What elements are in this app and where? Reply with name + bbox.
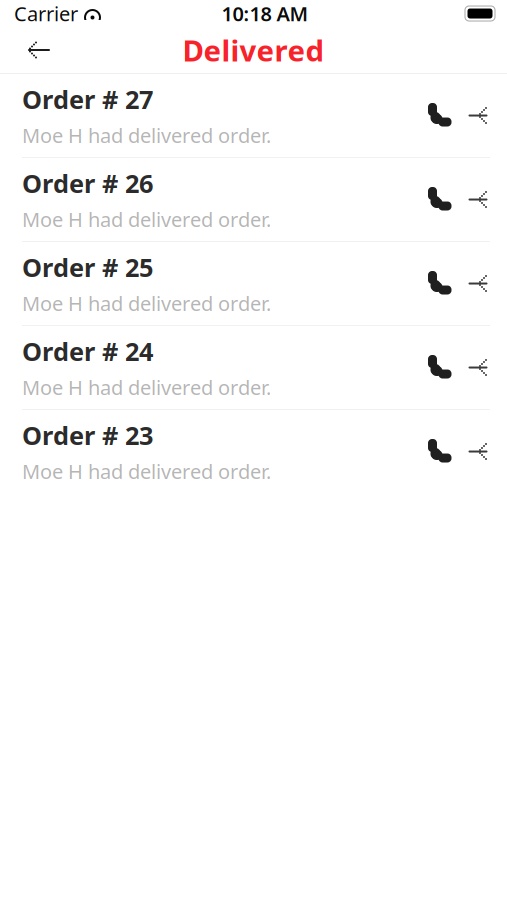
staticText: Order # 24	[22, 334, 153, 368]
button[interactable]: View order 25	[459, 257, 497, 309]
staticText: Moe H had delivered order.	[22, 122, 271, 149]
button[interactable]: View order 27	[459, 89, 497, 141]
button[interactable]: View order 24	[459, 341, 497, 393]
staticText: Moe H had delivered order.	[22, 290, 271, 317]
staticText: Moe H had delivered order.	[22, 374, 271, 401]
staticText: Carrier	[14, 0, 78, 27]
staticText: Delivered	[182, 30, 324, 69]
staticText: 10:18 AM	[221, 0, 308, 27]
staticText: Moe H had delivered order.	[22, 458, 271, 485]
button[interactable]: Call about order 25	[419, 257, 459, 309]
button[interactable]: View order 23	[459, 425, 497, 477]
staticText: Order # 23	[22, 418, 153, 452]
button[interactable]: Call about order 26	[419, 173, 459, 225]
button[interactable]: View order 26	[459, 173, 497, 225]
staticText: Order # 26	[22, 166, 153, 200]
button[interactable]: Back	[16, 28, 62, 72]
button[interactable]: Call about order 23	[419, 425, 459, 477]
button[interactable]: Call about order 27	[419, 89, 459, 141]
button[interactable]: Call about order 24	[419, 341, 459, 393]
staticText: Order # 25	[22, 250, 153, 284]
staticText: Moe H had delivered order.	[22, 206, 271, 233]
staticText: Order # 27	[22, 82, 153, 116]
